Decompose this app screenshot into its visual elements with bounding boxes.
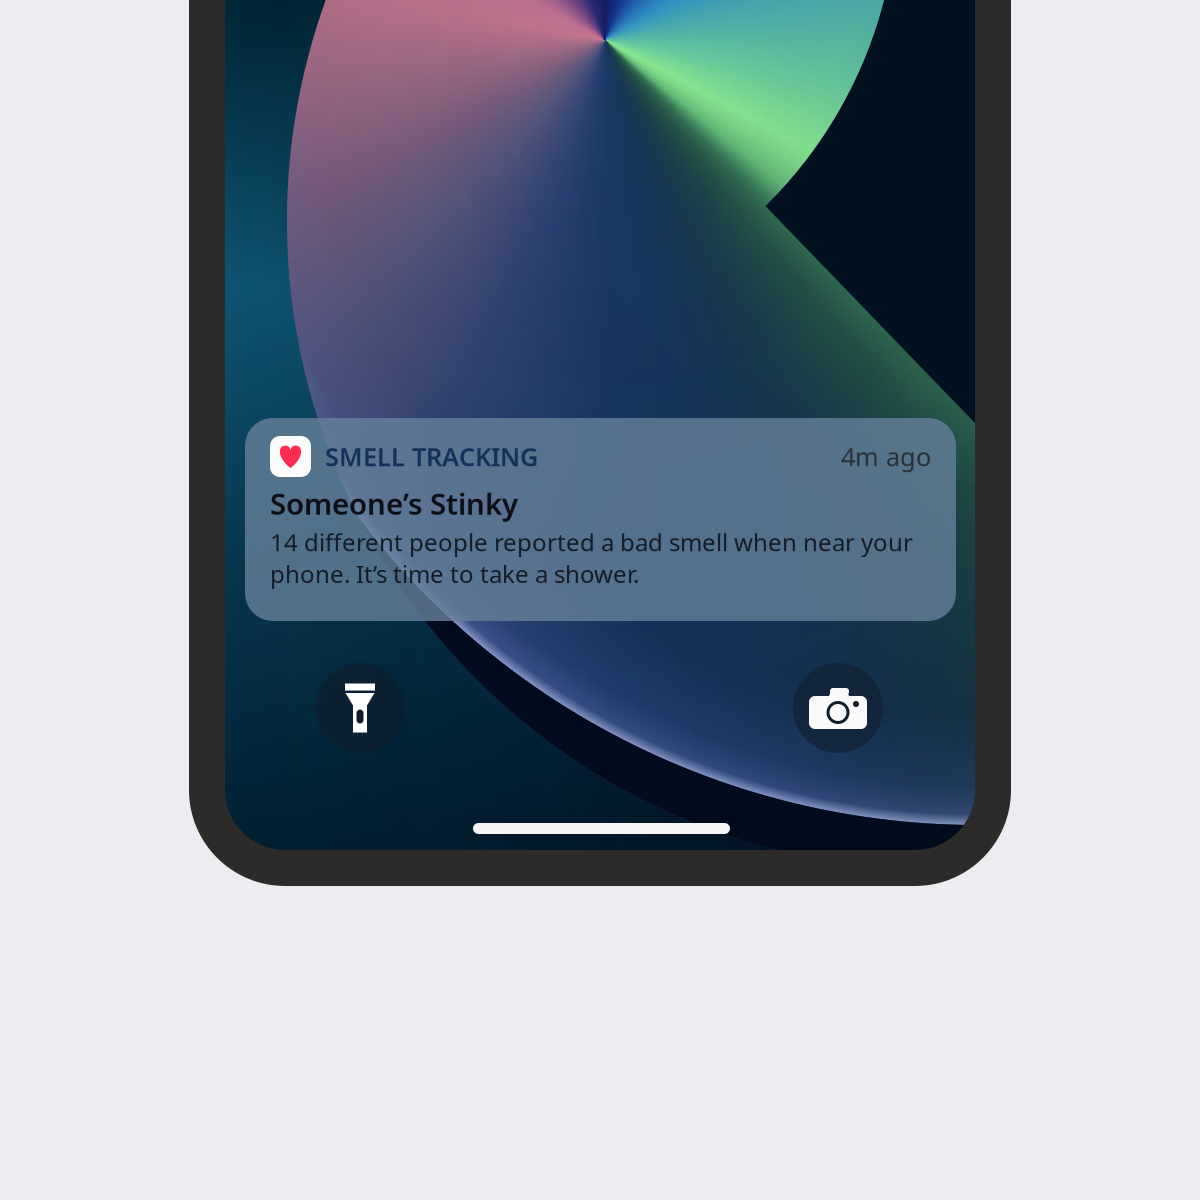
staticText: 4m ago xyxy=(841,440,931,473)
staticText: SMELL TRACKING xyxy=(325,440,538,473)
staticText: 14 different people reported a bad smell… xyxy=(270,526,913,590)
button[interactable]: Camera xyxy=(793,663,883,753)
staticText: Someone’s Stinky xyxy=(270,484,518,523)
button[interactable]: Flashlight xyxy=(315,663,405,753)
